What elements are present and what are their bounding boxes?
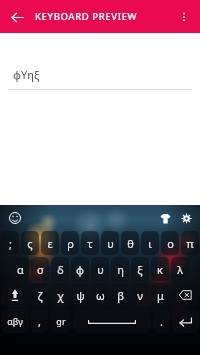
button[interactable]: υ	[101, 231, 119, 255]
button[interactable]: θ	[121, 231, 139, 255]
button[interactable]: ξ	[131, 257, 149, 281]
staticText: μ	[157, 288, 164, 303]
staticText: ψ	[76, 288, 85, 303]
button[interactable]: ω	[91, 283, 109, 307]
staticText: κ	[157, 262, 163, 277]
staticText: α	[17, 262, 24, 277]
button[interactable]: ν	[131, 283, 149, 307]
button[interactable]: .	[153, 309, 170, 333]
staticText: ν	[137, 288, 143, 303]
staticText: ξ	[137, 262, 143, 277]
staticText: KEYBOARD PREVIEW	[35, 10, 138, 23]
staticText: η	[117, 262, 124, 277]
button[interactable]: π	[181, 231, 199, 255]
staticText: θ	[127, 236, 134, 251]
button[interactable]: More options	[171, 4, 197, 30]
button[interactable]: υ	[91, 257, 109, 281]
button[interactable]: χ	[51, 283, 69, 307]
button[interactable]: δ	[51, 257, 69, 281]
button[interactable]: αβγ	[1, 309, 29, 333]
staticText: π	[186, 236, 194, 251]
button[interactable]: Shift	[1, 283, 29, 307]
staticText: χ	[57, 288, 64, 303]
button[interactable]: β	[111, 283, 129, 307]
button[interactable]: ;	[1, 231, 19, 255]
button[interactable]: ζ	[31, 283, 49, 307]
staticText: φΥηξ	[13, 67, 40, 82]
button[interactable]: α	[11, 257, 29, 281]
staticText: .	[160, 314, 163, 329]
staticText: τ	[87, 236, 93, 251]
button[interactable]: ο	[161, 231, 179, 255]
button[interactable]: Backspace	[171, 283, 199, 307]
staticText: ς	[27, 236, 33, 251]
staticText: αβγ	[7, 315, 23, 327]
button[interactable]: ι	[141, 231, 159, 255]
button[interactable]: ,	[31, 309, 48, 333]
staticText: υ	[97, 262, 104, 277]
staticText: ε	[47, 236, 53, 251]
staticText: gr	[56, 315, 66, 327]
button[interactable]: μ	[151, 283, 169, 307]
staticText: δ	[57, 262, 64, 277]
button[interactable]: κ	[151, 257, 169, 281]
staticText: ;	[9, 236, 12, 251]
button[interactable]: ς	[21, 231, 39, 255]
button[interactable]: ψ	[71, 283, 89, 307]
staticText: ι	[148, 236, 152, 251]
button[interactable]: λ	[171, 257, 189, 281]
staticText: ζ	[37, 288, 43, 303]
button[interactable]: σ	[31, 257, 49, 281]
staticText: ,	[38, 314, 41, 329]
button[interactable]: Emoji	[5, 208, 25, 228]
button[interactable]: τ	[81, 231, 99, 255]
staticText: ω	[96, 288, 105, 303]
button[interactable]: Enter	[172, 309, 199, 333]
staticText: ρ	[67, 236, 74, 251]
staticText: φ	[76, 262, 84, 277]
staticText: β	[117, 288, 124, 303]
button[interactable]: ρ	[61, 231, 79, 255]
button[interactable]: Back	[4, 4, 30, 30]
button[interactable]: Theme	[155, 208, 175, 228]
staticText: λ	[177, 262, 183, 277]
button[interactable]: φ	[71, 257, 89, 281]
staticText: ο	[167, 236, 174, 251]
button[interactable]: η	[111, 257, 129, 281]
button[interactable]: gr	[50, 309, 71, 333]
button[interactable]: ε	[41, 231, 59, 255]
staticText: σ	[37, 262, 44, 277]
staticText: υ	[107, 236, 114, 251]
button[interactable]: Settings	[176, 208, 196, 228]
button[interactable]: Space	[73, 309, 151, 333]
